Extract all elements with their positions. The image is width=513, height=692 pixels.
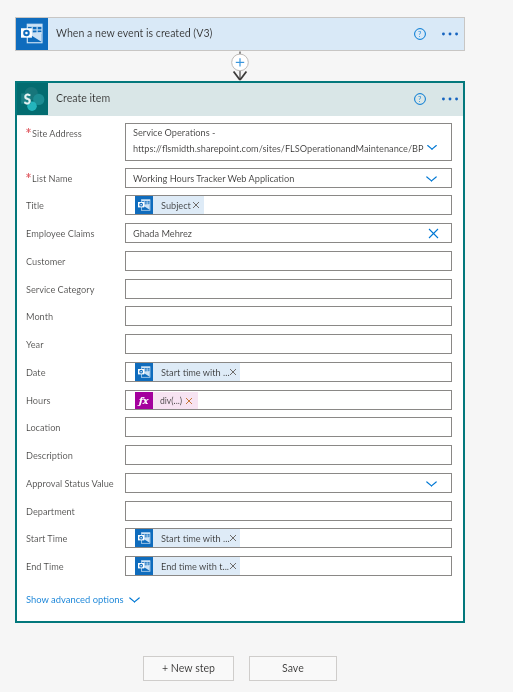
- button[interactable]: [125, 445, 452, 465]
- staticText: Date: [26, 367, 46, 378]
- staticText: When a new event is created (V3): [56, 27, 213, 40]
- button[interactable]: fx: [125, 390, 452, 410]
- staticText: ?: [418, 30, 422, 39]
- staticText: Working Hours Tracker Web Application: [133, 173, 295, 184]
- staticText: End time with t...: [161, 561, 230, 572]
- button[interactable]: More commands: [441, 90, 459, 108]
- button[interactable]: [125, 279, 452, 299]
- staticText: Department: [26, 506, 75, 517]
- staticText: Start time with ...: [161, 533, 230, 544]
- button[interactable]: Ghada Mehrez: [125, 223, 452, 243]
- button[interactable]: [125, 251, 452, 271]
- button[interactable]: Working Hours Tracker Web Application: [125, 168, 452, 188]
- button[interactable]: [125, 501, 452, 521]
- staticText: Service Operations -: [133, 127, 216, 138]
- staticText: Year: [26, 339, 44, 350]
- button[interactable]: [125, 473, 452, 493]
- staticText: https://flsmidth.sharepoint.com/sites/FL…: [133, 143, 424, 154]
- staticText: Customer: [26, 256, 66, 267]
- button[interactable]: Start time with ...: [125, 362, 452, 382]
- button[interactable]: More commands: [441, 25, 459, 43]
- staticText: + New step: [162, 662, 216, 675]
- staticText: div(...): [160, 396, 182, 406]
- staticText: Employee Claims: [26, 228, 95, 239]
- staticText: Description: [26, 450, 73, 461]
- staticText: Approval Status Value: [26, 478, 114, 489]
- staticText: Create item: [56, 92, 111, 105]
- button[interactable]: Save: [249, 656, 337, 681]
- button[interactable]: Help: [412, 91, 428, 107]
- staticText: Start Time: [26, 533, 68, 544]
- staticText: Show advanced options: [26, 594, 124, 605]
- button[interactable]: End time with t...: [125, 556, 452, 576]
- button[interactable]: Help: [412, 26, 428, 42]
- staticText: Service Category: [26, 284, 95, 295]
- staticText: Start time with ...: [161, 367, 230, 378]
- staticText: Ghada Mehrez: [133, 228, 192, 239]
- staticText: Site Address: [32, 128, 82, 139]
- staticText: Month: [26, 311, 54, 322]
- button[interactable]: [125, 334, 452, 354]
- staticText: List Name: [32, 173, 73, 184]
- button[interactable]: Service Operations -: [125, 123, 452, 161]
- button[interactable]: Show advanced options: [26, 591, 141, 607]
- button[interactable]: Start time with ...: [125, 528, 452, 548]
- button[interactable]: [125, 417, 452, 437]
- button[interactable]: Subject: [125, 195, 452, 215]
- staticText: Location: [26, 422, 61, 433]
- staticText: End Time: [26, 561, 64, 572]
- staticText: Subject: [161, 200, 191, 211]
- button[interactable]: + New step: [143, 656, 234, 681]
- staticText: Hours: [26, 395, 51, 406]
- staticText: S: [24, 92, 31, 107]
- button[interactable]: S: [15, 81, 465, 116]
- staticText: Save: [282, 662, 304, 675]
- staticText: Title: [26, 200, 44, 211]
- staticText: fx: [139, 394, 149, 407]
- button[interactable]: [125, 306, 452, 326]
- button[interactable]: When a new event is created (V3): [15, 17, 465, 50]
- staticText: ?: [418, 95, 422, 104]
